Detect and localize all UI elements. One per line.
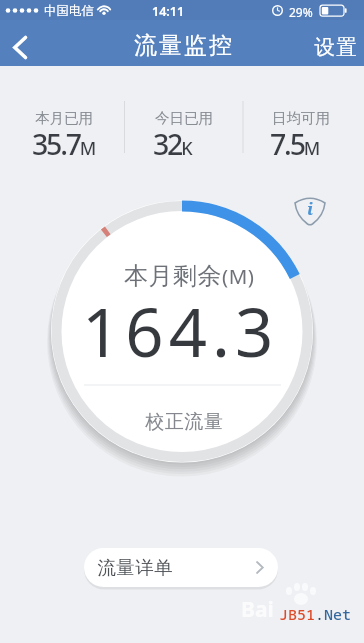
staticText: 日均可用 xyxy=(272,109,330,127)
staticText: 本月剩余(M) xyxy=(124,261,255,291)
button[interactable]: i xyxy=(291,190,329,228)
staticText: Bai xyxy=(241,595,274,624)
staticText: 本月已用 xyxy=(35,109,93,127)
staticText: 校正流量 xyxy=(145,410,223,434)
staticText: 35.7M xyxy=(32,125,97,164)
button[interactable]: 设置 xyxy=(306,20,364,66)
staticText: 32K xyxy=(153,125,193,164)
staticText: 164.3 xyxy=(82,285,279,376)
button[interactable]: 校正流量 xyxy=(114,407,254,437)
staticText: 29% xyxy=(289,4,313,20)
staticText: 14:11 xyxy=(152,3,185,20)
button[interactable]: 流量详单 xyxy=(84,548,278,587)
staticText: 今日已用 xyxy=(155,109,213,127)
button[interactable] xyxy=(0,20,40,66)
staticText: 设置 xyxy=(314,34,357,60)
staticText: i xyxy=(307,197,314,220)
staticText: 中国电信 xyxy=(44,3,94,19)
staticText: JB51.Net xyxy=(279,604,352,624)
staticText: 7.5M xyxy=(270,125,321,164)
staticText: 流量监控 xyxy=(133,31,233,60)
staticText: 流量详单 xyxy=(97,556,173,579)
